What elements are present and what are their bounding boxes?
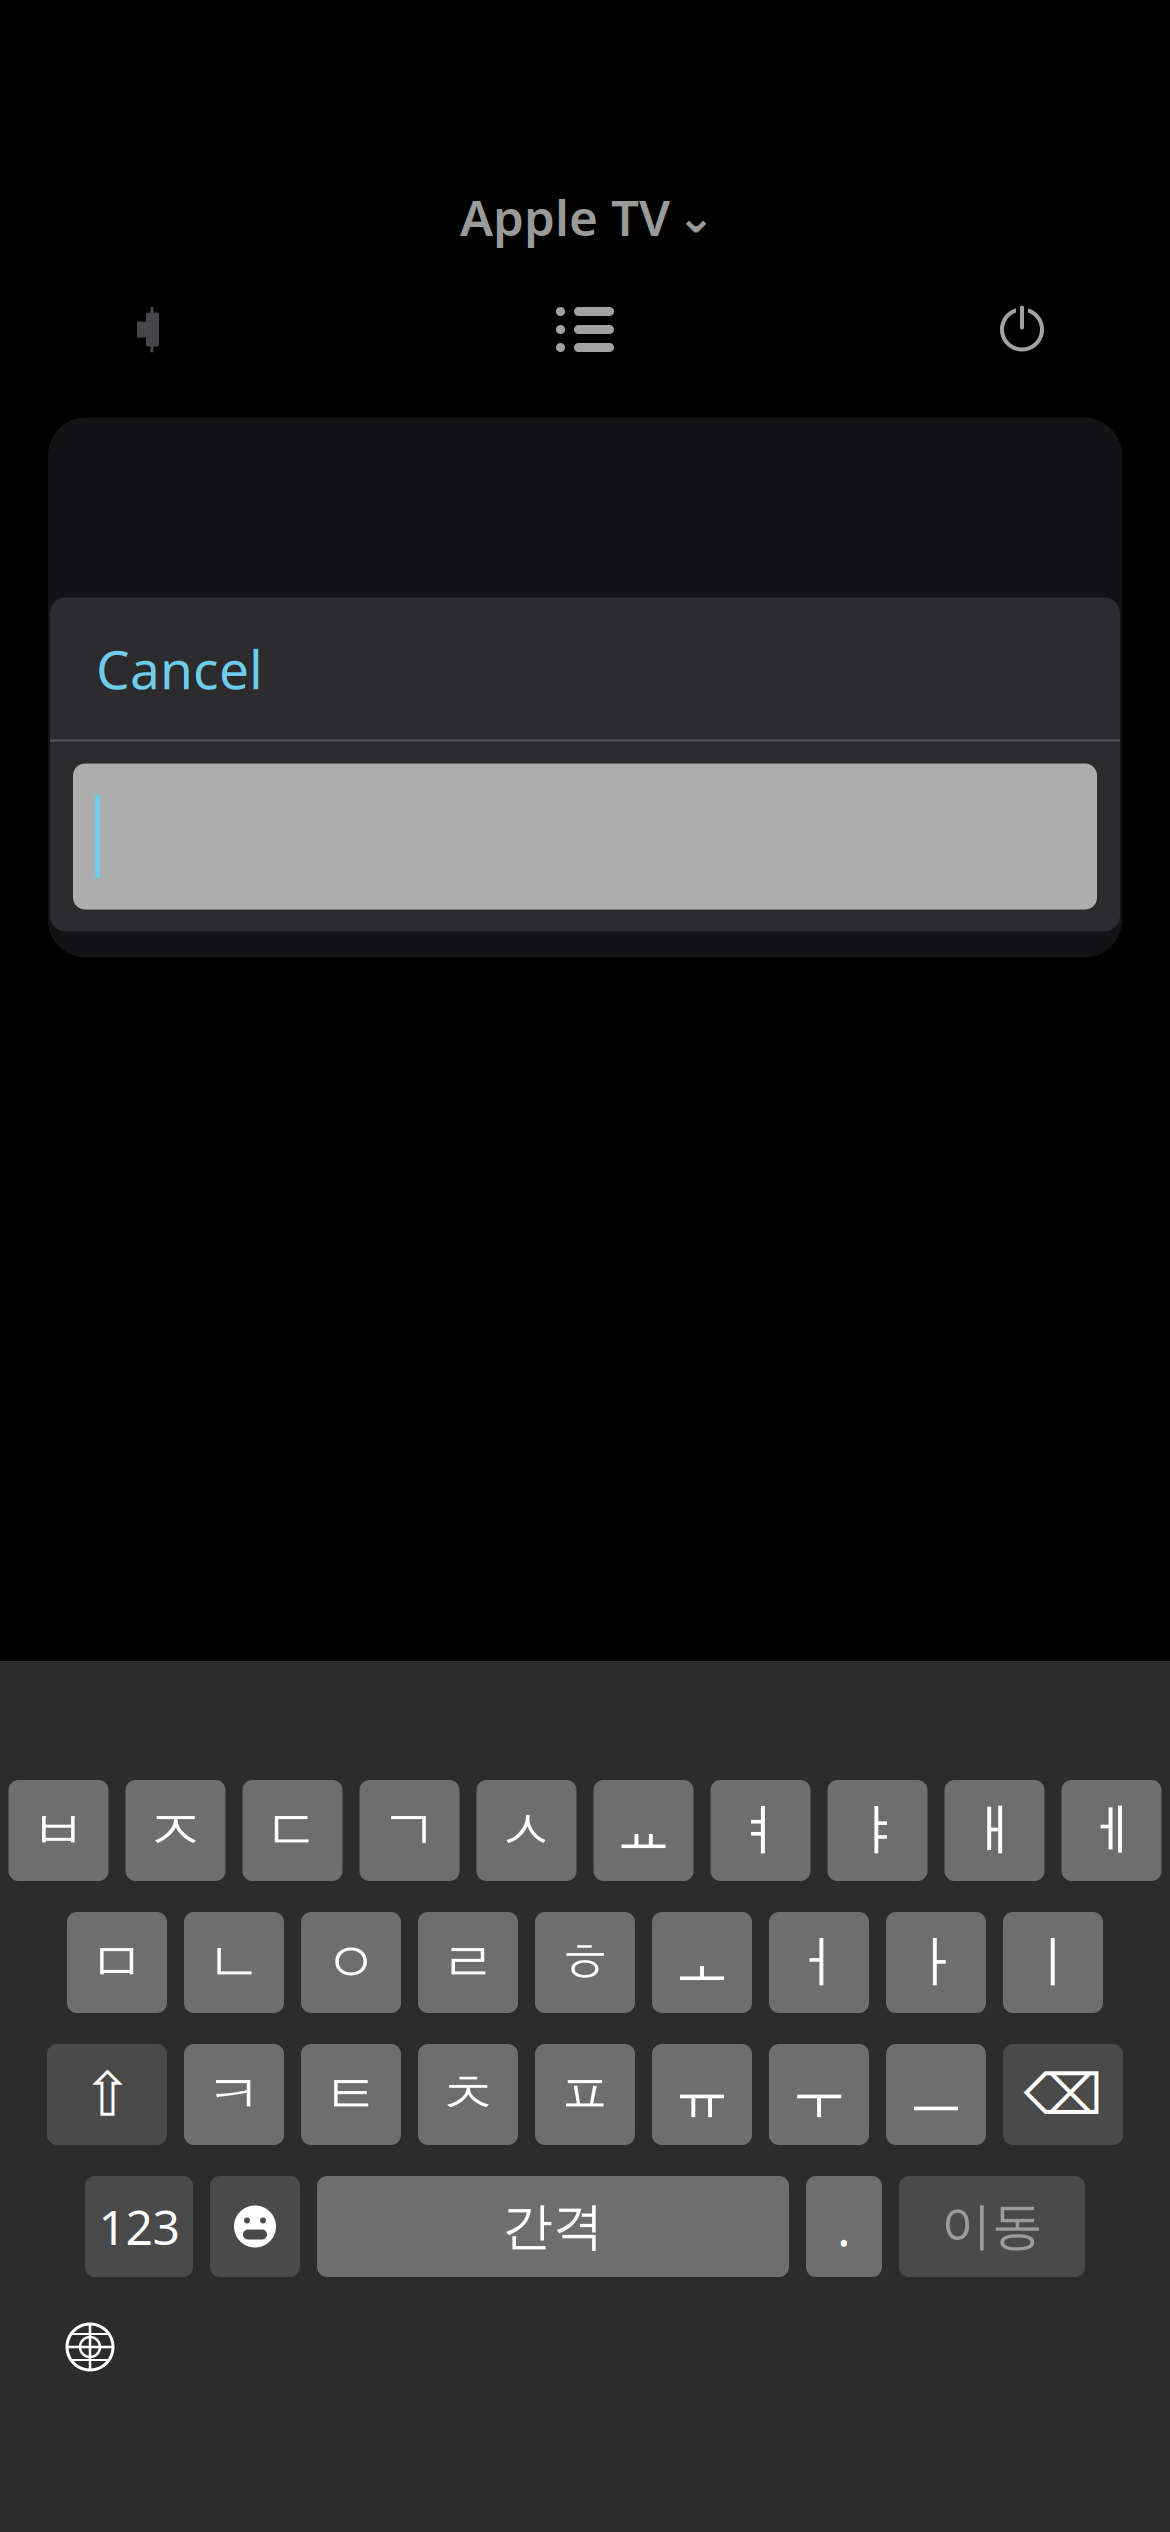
staticText: ㄷ (264, 1796, 320, 1865)
button[interactable]: Menu (537, 289, 633, 369)
button[interactable]: ㅗ (652, 1912, 752, 2013)
staticText: ㄴ (206, 1928, 262, 1997)
button[interactable]: ㅕ (710, 1780, 810, 1881)
button[interactable]: 이동 (899, 2176, 1085, 2277)
button[interactable]: ㄱ (359, 1780, 459, 1881)
button[interactable]: Mute (100, 289, 196, 369)
button[interactable]: . (806, 2176, 882, 2277)
staticText: ㅍ (557, 2060, 613, 2129)
staticText: ㅠ (674, 2060, 730, 2129)
staticText: ㅕ (732, 1796, 788, 1865)
button[interactable]: ㄴ (184, 1912, 284, 2013)
button[interactable]: Apple TV (442, 178, 728, 255)
staticText: ㅣ (1025, 1928, 1081, 1997)
button[interactable]: ㅂ (8, 1780, 108, 1881)
staticText: 간격 (502, 2195, 604, 2258)
button[interactable]: ㅜ (769, 2044, 869, 2145)
button[interactable]: ㅋ (184, 2044, 284, 2145)
staticText: ㅎ (557, 1928, 613, 1997)
button[interactable]: Next keyboard (54, 2311, 126, 2383)
button[interactable]: ㅛ (593, 1780, 693, 1881)
button[interactable]: ㅡ (886, 2044, 986, 2145)
staticText: 123 (98, 2195, 179, 2258)
staticText: ㅓ (791, 1928, 847, 1997)
button[interactable]: Emoji (210, 2176, 300, 2277)
button[interactable]: ㅎ (535, 1912, 635, 2013)
button[interactable]: ㅓ (769, 1912, 869, 2013)
button[interactable]: ㅌ (301, 2044, 401, 2145)
staticText: ㄹ (440, 1928, 496, 1997)
staticText: ㅏ (908, 1928, 964, 1997)
staticText: ㅇ (323, 1928, 379, 1997)
button[interactable]: Delete (1003, 2044, 1123, 2145)
staticText: ⇧ (81, 2060, 132, 2129)
staticText: ⌫ (1023, 2063, 1102, 2126)
staticText: Cancel (96, 633, 263, 704)
staticText: 이동 (941, 2195, 1043, 2258)
staticText: ㅑ (849, 1796, 905, 1865)
button[interactable]: 123 (85, 2176, 193, 2277)
staticText: ⌄ (677, 191, 715, 242)
staticText: ㅔ (1083, 1796, 1139, 1865)
button[interactable]: ㅔ (1061, 1780, 1161, 1881)
staticText: ㅁ (89, 1928, 145, 1997)
button[interactable]: ㅏ (886, 1912, 986, 2013)
button[interactable]: Shift (47, 2044, 167, 2145)
button[interactable]: ㅐ (944, 1780, 1044, 1881)
button[interactable]: ㅠ (652, 2044, 752, 2145)
button[interactable]: ㅊ (418, 2044, 518, 2145)
staticText: ㅅ (498, 1796, 554, 1865)
button[interactable]: ㄹ (418, 1912, 518, 2013)
staticText: ㅈ (147, 1796, 203, 1865)
staticText: ㅋ (206, 2060, 262, 2129)
button[interactable]: 간격 (317, 2176, 789, 2277)
staticText: . (837, 2193, 851, 2260)
button[interactable]: ㅣ (1003, 1912, 1103, 2013)
staticText: ㄱ (381, 1796, 437, 1865)
staticText: ㅡ (908, 2060, 964, 2129)
button[interactable]: ㄷ (242, 1780, 342, 1881)
staticText: ㅊ (440, 2060, 496, 2129)
staticText: ㅗ (674, 1928, 730, 1997)
button[interactable]: ㅈ (125, 1780, 225, 1881)
staticText: ㅌ (323, 2060, 379, 2129)
staticText: ㅂ (30, 1796, 86, 1865)
button[interactable]: ㅍ (535, 2044, 635, 2145)
staticText: Apple TV (460, 184, 670, 249)
button[interactable]: ㅅ (476, 1780, 576, 1881)
button[interactable]: ㅇ (301, 1912, 401, 2013)
staticText: ㅛ (615, 1796, 671, 1865)
button[interactable]: ㅁ (67, 1912, 167, 2013)
staticText: ㅐ (966, 1796, 1022, 1865)
button[interactable]: Cancel (82, 623, 277, 714)
button[interactable]: ㅑ (827, 1780, 927, 1881)
button[interactable]: Power (974, 289, 1070, 369)
staticText: ㅜ (791, 2060, 847, 2129)
